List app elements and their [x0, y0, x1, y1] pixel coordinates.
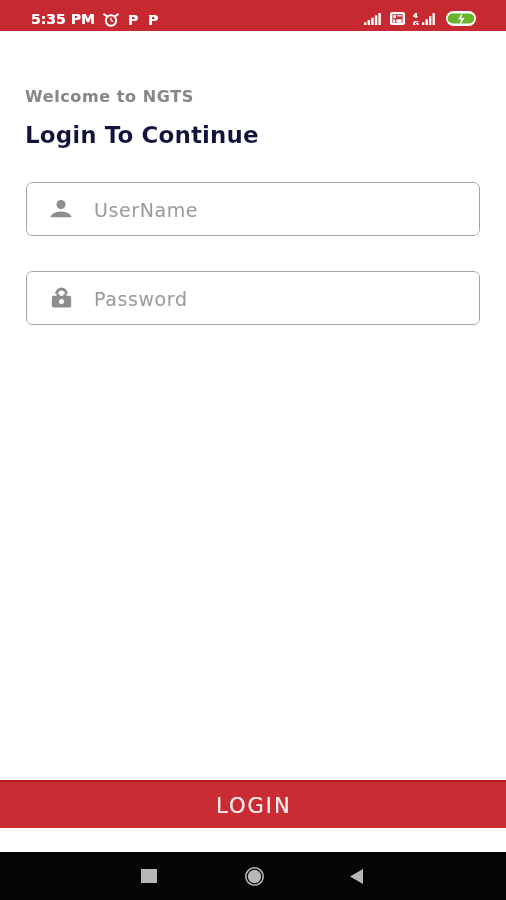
staticText: LOGIN	[216, 794, 292, 818]
staticText: Welcome to NGTS	[25, 87, 194, 106]
button[interactable]: Recent apps	[125, 852, 173, 900]
staticText: Password	[94, 288, 188, 310]
staticText: P	[148, 12, 159, 26]
staticText: Login To Continue	[25, 122, 259, 149]
staticText: P	[128, 12, 139, 26]
staticText: 4G	[413, 12, 422, 25]
staticText: 5:35 PM	[31, 11, 95, 27]
button[interactable]: Home	[230, 852, 278, 900]
button[interactable]: Back	[332, 852, 380, 900]
button[interactable]: LOGIN	[0, 780, 506, 828]
button[interactable]: Password	[26, 271, 480, 325]
button[interactable]: UserName	[26, 182, 480, 236]
staticText: UserName	[94, 199, 199, 221]
